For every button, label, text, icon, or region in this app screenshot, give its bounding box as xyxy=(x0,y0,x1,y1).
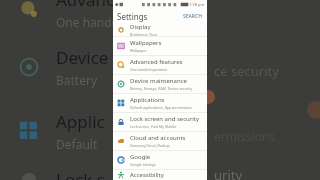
button[interactable]: Device maintenance xyxy=(113,75,207,93)
staticText: urity xyxy=(214,166,243,180)
button[interactable]: Cloud and accounts xyxy=(113,132,207,150)
staticText: SEARCH xyxy=(183,13,202,20)
staticText: Display xyxy=(130,23,151,31)
button[interactable]: Display xyxy=(113,23,207,36)
staticText: Applications xyxy=(130,96,165,104)
other: Google xyxy=(117,156,125,164)
other: Cloud and accounts xyxy=(117,137,125,145)
staticText: Default applications, App permissions xyxy=(130,105,193,110)
staticText: Samsung Cloud, Backup xyxy=(130,143,170,148)
staticText: One handed xyxy=(56,14,126,30)
staticText: Device xyxy=(56,46,109,69)
staticText: Cloud and accounts xyxy=(130,134,186,142)
staticText: Wallpapers xyxy=(130,39,162,47)
button[interactable]: Advanced features xyxy=(113,56,207,74)
staticText: Device maintenance xyxy=(130,77,187,85)
button[interactable]: Wallpapers xyxy=(113,37,207,55)
other: Device maintenance xyxy=(117,80,125,88)
other: Display xyxy=(117,26,125,34)
staticText: Lock screen, Find My Mobile xyxy=(130,124,177,129)
staticText: Battery, Storage, RAM, Device security xyxy=(130,86,193,91)
staticText: Lock s xyxy=(56,168,105,180)
staticText: Google settings xyxy=(130,162,156,167)
staticText: Battery xyxy=(56,72,98,88)
other: Wallpapers xyxy=(117,42,125,50)
staticText: One-handed operation xyxy=(130,67,168,72)
staticText: Default xyxy=(56,136,98,152)
button[interactable]: Applications xyxy=(113,94,207,112)
staticText: ce security xyxy=(214,62,279,80)
other: Advanced features xyxy=(117,61,125,69)
other: Lock screen and security xyxy=(117,118,125,126)
button[interactable]: Accessibility xyxy=(113,170,207,180)
staticText: Advanced xyxy=(56,0,128,11)
staticText: Wallpaper xyxy=(130,48,147,53)
staticText: Accessibility xyxy=(130,171,164,179)
staticText: 1:38 pm xyxy=(189,2,205,7)
other: Applications xyxy=(117,99,125,107)
staticText: Settings xyxy=(117,11,148,22)
staticText: Advanced features xyxy=(130,58,183,66)
button[interactable]: Google xyxy=(113,151,207,169)
staticText: Google xyxy=(130,153,151,161)
staticText: Applic xyxy=(56,110,105,133)
staticText: Brightness, Font xyxy=(130,32,157,36)
other: Accessibility xyxy=(117,171,125,179)
staticText: Lock screen and security xyxy=(130,115,199,123)
button[interactable]: SEARCH xyxy=(182,12,203,21)
staticText: ermissions xyxy=(214,128,276,144)
button[interactable]: Lock screen and security xyxy=(113,113,207,131)
